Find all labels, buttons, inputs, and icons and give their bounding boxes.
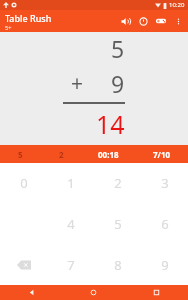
- staticText: 5: [18, 149, 23, 160]
- button[interactable]: Backspace: [0, 244, 47, 285]
- button[interactable]: 0: [0, 163, 47, 203]
- button[interactable]: Recents: [125, 285, 188, 300]
- staticText: Table Rush: [5, 12, 52, 24]
- button[interactable]: Home: [62, 285, 125, 300]
- button[interactable]: 7: [47, 244, 94, 285]
- button[interactable]: 5: [94, 203, 141, 244]
- button[interactable]: 3: [141, 163, 188, 203]
- staticText: 5: [114, 215, 122, 233]
- button[interactable]: Restart: [134, 12, 152, 30]
- staticText: 2: [114, 174, 122, 192]
- button[interactable]: Back: [0, 285, 62, 300]
- staticText: 5: [111, 33, 125, 64]
- staticText: 0: [20, 174, 28, 192]
- button[interactable]: 4: [47, 203, 94, 244]
- staticText: 7/10: [153, 149, 171, 160]
- staticText: 10:20: [169, 1, 185, 9]
- staticText: +: [71, 69, 84, 98]
- staticText: 14: [96, 107, 125, 141]
- staticText: 7: [67, 256, 75, 274]
- staticText: 1: [67, 174, 75, 192]
- staticText: 9: [111, 68, 125, 99]
- button[interactable]: 8: [94, 244, 141, 285]
- staticText: 8: [114, 256, 122, 274]
- staticText: 2: [59, 149, 64, 160]
- staticText: 5+: [5, 24, 12, 31]
- button[interactable]: 2: [94, 163, 141, 203]
- staticText: 00:18: [98, 149, 119, 160]
- staticText: 3: [161, 174, 169, 192]
- button[interactable]: Sound: [116, 12, 134, 30]
- staticText: 4: [67, 215, 75, 233]
- button[interactable]: 6: [141, 203, 188, 244]
- staticText: 9: [161, 256, 169, 274]
- button[interactable]: 9: [141, 244, 188, 285]
- button[interactable]: More options: [170, 13, 186, 29]
- staticText: 6: [161, 215, 169, 233]
- button[interactable]: Games: [152, 12, 170, 30]
